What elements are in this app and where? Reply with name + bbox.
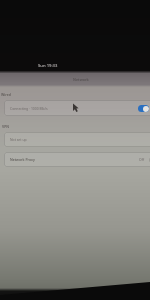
button[interactable]: Wired toggle <box>138 105 149 112</box>
button[interactable]: Connecting · 1000 Mb/s <box>4 100 150 116</box>
button[interactable]: Network Proxy <box>4 152 150 167</box>
staticText: Network <box>73 77 89 82</box>
staticText: Sun 19:33 <box>38 63 58 69</box>
staticText: Off <box>139 157 144 162</box>
staticText: Not set up <box>10 137 27 142</box>
button[interactable]: Not set up <box>4 132 150 147</box>
staticText: Network Proxy <box>10 157 35 162</box>
staticText: Wired <box>1 92 11 97</box>
staticText: VPN <box>2 124 10 129</box>
staticText: Connecting · 1000 Mb/s <box>10 106 48 111</box>
